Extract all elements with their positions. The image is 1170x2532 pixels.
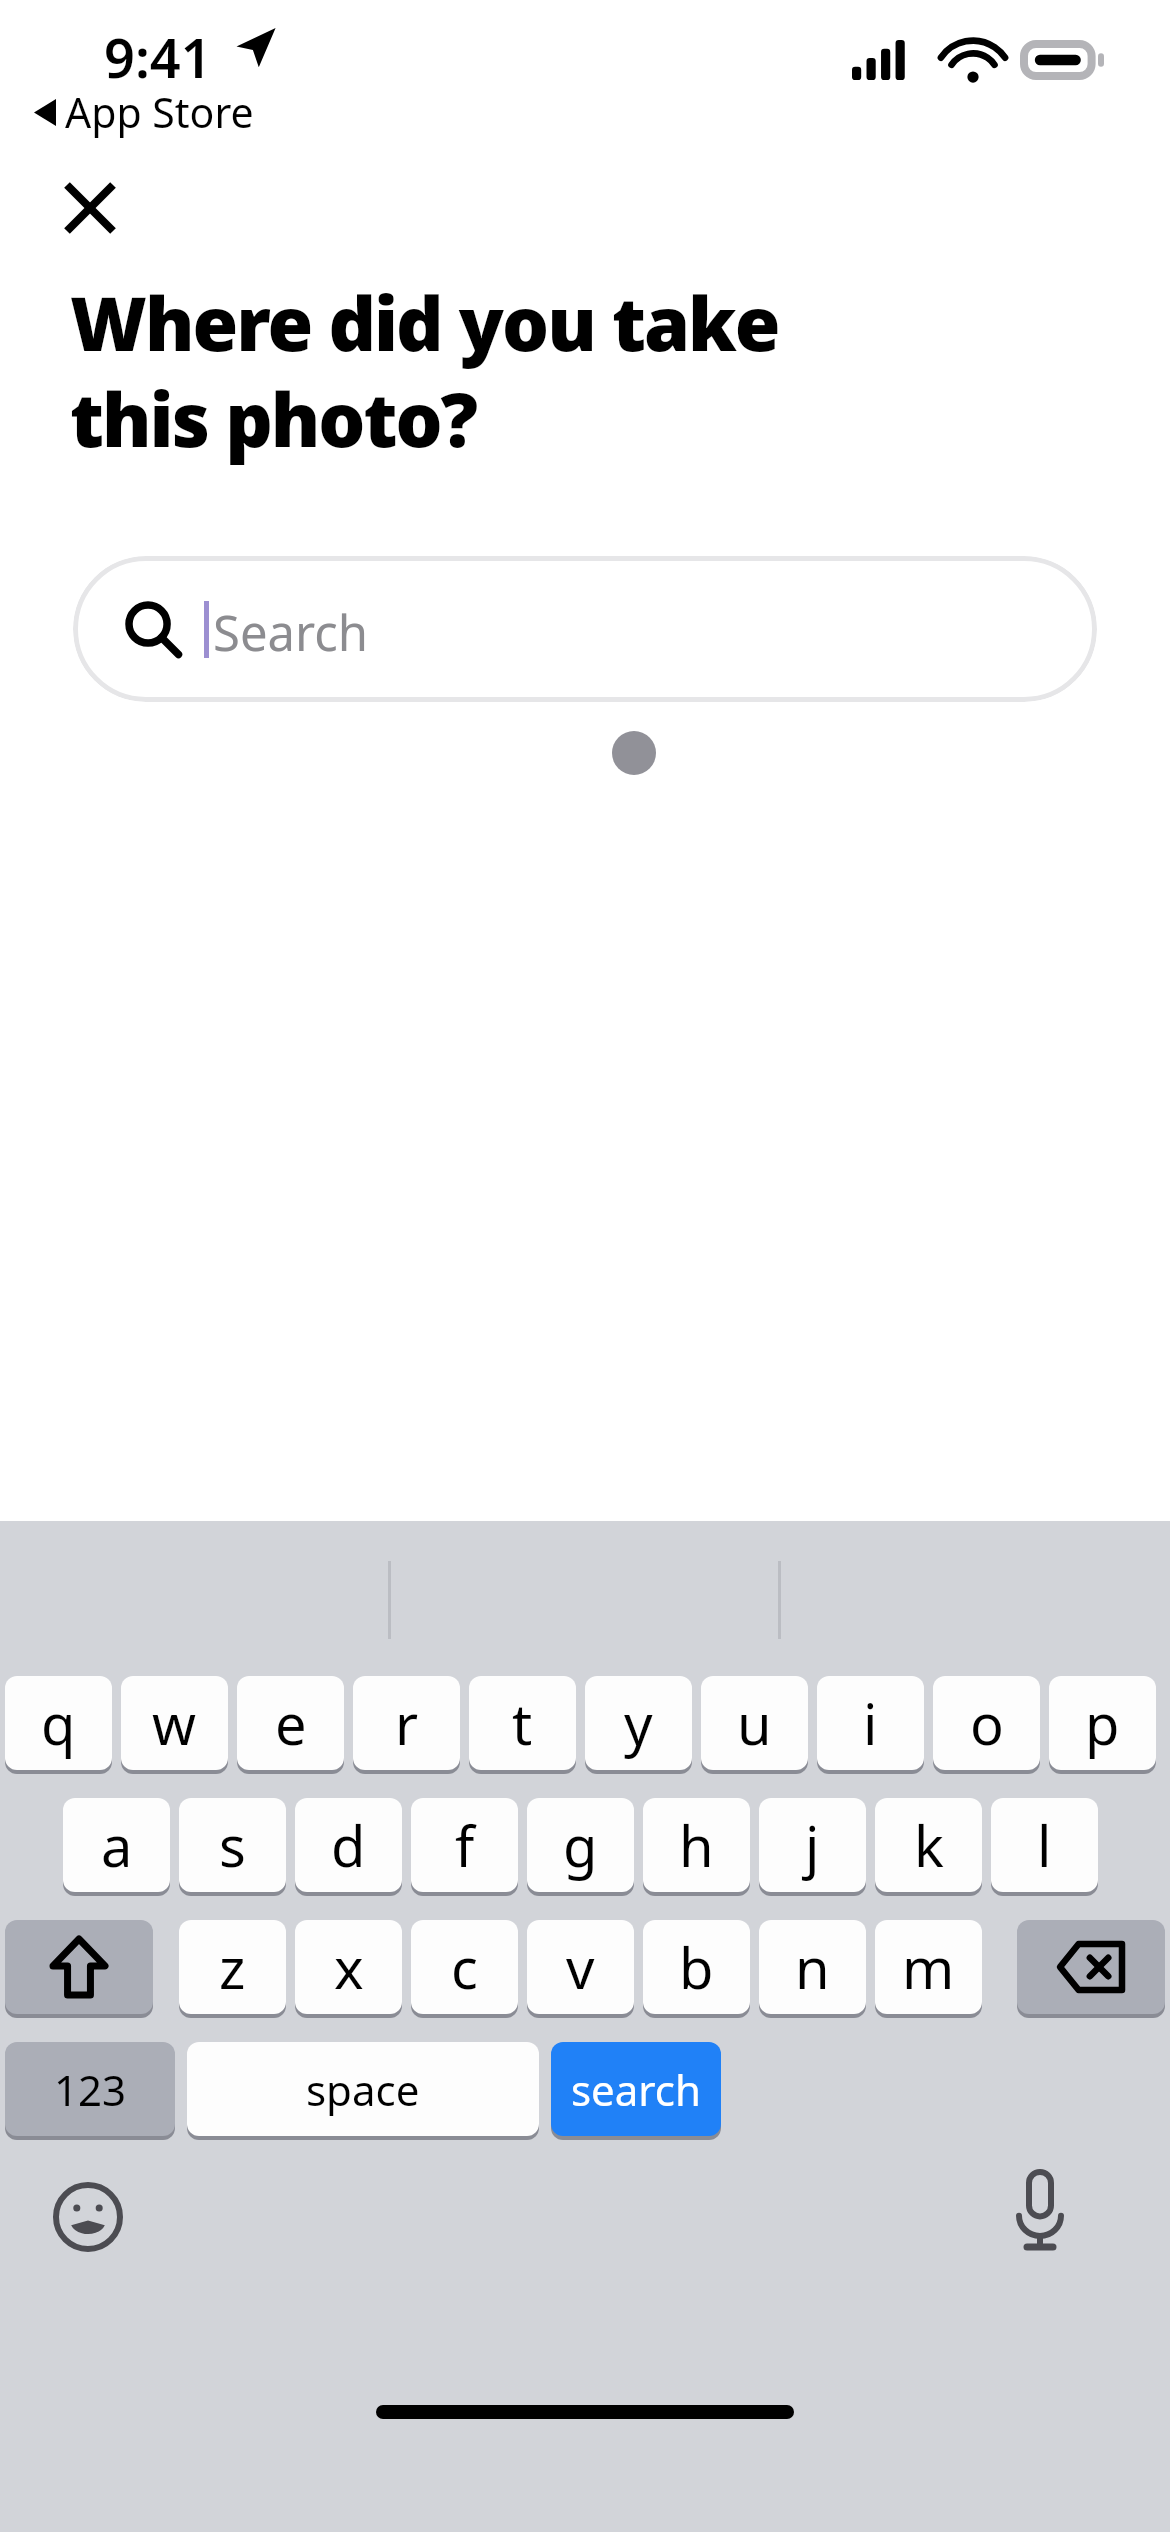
staticText: App Store [65,84,254,140]
staticText: n [795,1929,830,2005]
button[interactable]: Shift [5,1920,153,2014]
button[interactable]: e [237,1676,344,1770]
button[interactable]: 123 [5,2042,175,2136]
staticText: o [970,1685,1004,1761]
button[interactable]: Emoji [40,2169,136,2265]
staticText: t [512,1685,533,1761]
button[interactable]: a [63,1798,170,1892]
staticText: u [737,1685,772,1761]
button[interactable]: j [759,1798,866,1892]
button[interactable]: f [411,1798,518,1892]
button[interactable]: search [551,2042,721,2136]
staticText: q [41,1685,76,1761]
staticText: r [395,1685,419,1761]
staticText: x [334,1929,364,2005]
button[interactable]: x [295,1920,402,2014]
button[interactable]: m [875,1920,982,2014]
staticText: d [331,1807,366,1883]
button[interactable]: Search [73,556,1097,702]
button[interactable]: Backspace [1017,1920,1165,2014]
staticText: space [306,2061,420,2118]
button[interactable]: t [469,1676,576,1770]
staticText: Search [213,599,369,666]
button[interactable]: i [817,1676,924,1770]
button[interactable]: h [643,1798,750,1892]
button[interactable]: w [121,1676,228,1770]
staticText: k [914,1807,944,1883]
button[interactable]: g [527,1798,634,1892]
button[interactable]: n [759,1920,866,2014]
staticText: i [863,1685,878,1761]
button[interactable]: c [411,1920,518,2014]
staticText: b [679,1929,714,2005]
staticText: 123 [54,2061,127,2118]
button[interactable]: App Store [34,84,254,140]
button[interactable]: Close [42,160,138,256]
staticText: 9:41 [104,20,212,94]
button[interactable]: v [527,1920,634,2014]
button[interactable]: q [5,1676,112,1770]
staticText: f [455,1807,475,1883]
button[interactable]: k [875,1798,982,1892]
button[interactable]: p [1049,1676,1156,1770]
button[interactable]: d [295,1798,402,1892]
button[interactable]: z [179,1920,286,2014]
staticText: h [679,1807,714,1883]
staticText: s [219,1807,246,1883]
staticText: w [152,1685,197,1761]
staticText: j [805,1807,820,1883]
button[interactable]: o [933,1676,1040,1770]
button[interactable]: r [353,1676,460,1770]
button[interactable]: u [701,1676,808,1770]
staticText: Where did you take this photo? [70,272,990,469]
button[interactable]: Dictation [992,2163,1088,2259]
button[interactable]: b [643,1920,750,2014]
staticText: g [563,1807,598,1883]
staticText: y [624,1685,653,1761]
staticText: l [1037,1807,1052,1883]
staticText: c [451,1929,478,2005]
staticText: a [101,1807,133,1883]
staticText: v [566,1929,595,2005]
button[interactable]: space [187,2042,539,2136]
button[interactable]: s [179,1798,286,1892]
staticText: e [275,1685,307,1761]
staticText: z [219,1929,246,2005]
button[interactable]: l [991,1798,1098,1892]
staticText: p [1085,1685,1120,1761]
button[interactable]: y [585,1676,692,1770]
staticText: search [571,2061,701,2118]
staticText: m [902,1929,955,2005]
